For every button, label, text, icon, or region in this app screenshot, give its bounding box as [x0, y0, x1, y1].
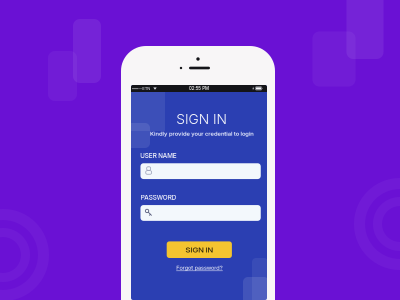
staticText: SIGN IN [100, 86, 303, 152]
staticText: Kindly provide your credential to login [0, 116, 400, 151]
staticText: PASSWORD [70, 178, 246, 217]
staticText: USER NAME [67, 137, 249, 175]
staticText: Forgot password? [83, 251, 315, 285]
staticText: SIGN IN [130, 226, 269, 273]
staticText: ETN [121, 73, 171, 104]
staticText: 02:55 PM [139, 72, 259, 104]
button[interactable]: SIGN IN [167, 241, 232, 258]
button[interactable]: Forgot password? [176, 265, 223, 271]
